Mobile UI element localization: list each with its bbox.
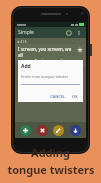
staticText: CANCEL — [50, 94, 66, 99]
button[interactable]: Favorite — [76, 46, 83, 53]
staticText: tongue twisters — [7, 162, 95, 177]
button[interactable]: OK — [70, 92, 80, 101]
staticText: OK — [72, 94, 78, 99]
button[interactable]: Share — [70, 125, 81, 136]
staticText: Add — [21, 63, 31, 70]
button[interactable]: Add — [20, 125, 31, 136]
button[interactable]: I scream, you scream, we all scream for … — [15, 44, 86, 66]
button[interactable]: CANCEL — [48, 92, 68, 101]
staticText: Adding — [31, 145, 70, 160]
staticText: Enter new tongue twister — [21, 74, 69, 79]
button[interactable]: Delete — [37, 125, 48, 136]
button[interactable]: More options — [75, 29, 83, 37]
button[interactable]: Edit — [53, 125, 64, 136]
staticText: ★ 4 / 5 — [17, 40, 27, 44]
button[interactable]: Search — [65, 29, 73, 37]
staticText: Simple — [18, 29, 34, 36]
staticText: I scream, you scream, we all scream for … — [18, 46, 76, 64]
